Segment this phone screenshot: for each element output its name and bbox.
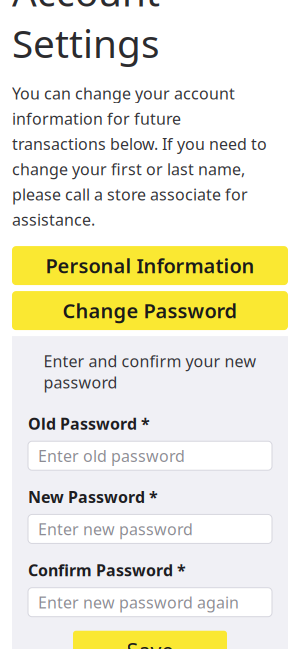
staticText: Old Password *	[28, 413, 150, 434]
button[interactable]: Enter old password	[28, 441, 272, 470]
button[interactable]: Personal Information	[12, 246, 288, 285]
staticText: Enter old password	[38, 445, 185, 466]
button[interactable]: Enter new password again	[28, 588, 272, 617]
staticText: Change Password	[62, 297, 237, 324]
staticText: Enter and confirm your new password	[43, 350, 256, 393]
staticText: New Password *	[28, 486, 158, 507]
staticText: Account Settings	[12, 0, 160, 69]
staticText: Enter new password	[38, 518, 193, 539]
button[interactable]: Enter new password	[28, 514, 272, 543]
staticText: Enter new password again	[38, 592, 239, 613]
staticText: Confirm Password *	[28, 559, 186, 581]
staticText: You can change your account information …	[12, 83, 267, 230]
staticText: Personal Information	[45, 252, 254, 279]
staticText: Save	[126, 636, 173, 649]
button[interactable]: Change Password	[12, 291, 288, 330]
button[interactable]: Save	[73, 631, 227, 649]
